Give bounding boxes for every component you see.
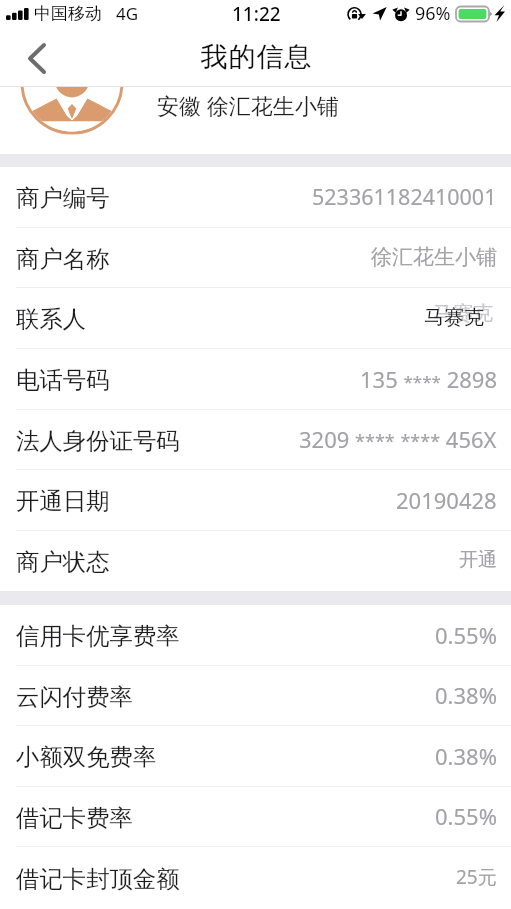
- staticText: 中国移动: [34, 3, 102, 24]
- button[interactable]: Back: [10, 30, 64, 84]
- staticText: 开通日期: [16, 486, 110, 515]
- staticText: 3209 **** **** 456X: [299, 424, 497, 454]
- staticText: 0.38%: [435, 741, 497, 771]
- staticText: 0.38%: [435, 680, 497, 710]
- staticText: 法人身份证号码: [16, 426, 180, 455]
- staticText: 小额双免费率: [16, 742, 157, 771]
- button[interactable]: 借记卡封顶金额: [0, 847, 511, 909]
- staticText: 135 **** 2898: [360, 364, 497, 394]
- staticText: 523361182410001: [312, 182, 497, 211]
- button[interactable]: 开通日期: [0, 470, 511, 531]
- staticText: 联系人: [16, 304, 87, 333]
- button[interactable]: 联系人: [0, 288, 511, 349]
- staticText: 商户状态: [16, 547, 110, 576]
- staticText: 4G: [116, 2, 139, 25]
- button[interactable]: 借记卡费率: [0, 787, 511, 847]
- staticText: 96%: [415, 1, 451, 26]
- staticText: 25元: [456, 864, 497, 890]
- button[interactable]: 小额双免费率: [0, 726, 511, 787]
- staticText: 11:22: [232, 1, 281, 27]
- staticText: 商户编号: [16, 183, 110, 212]
- staticText: 20190428: [396, 485, 497, 515]
- button[interactable]: 商户名称: [0, 228, 511, 288]
- button[interactable]: 云闪付费率: [0, 666, 511, 726]
- staticText: 借记卡封顶金额: [16, 864, 180, 893]
- button[interactable]: 商户状态: [0, 531, 511, 591]
- staticText: 我的信息: [200, 40, 312, 74]
- button[interactable]: 商户编号: [0, 167, 511, 228]
- button[interactable]: 电话号码: [0, 349, 511, 410]
- staticText: 马赛克: [433, 301, 493, 326]
- staticText: 借记卡费率: [16, 803, 133, 832]
- staticText: 安徽 徐汇花生小铺: [157, 90, 339, 120]
- staticText: 云闪付费率: [16, 682, 133, 711]
- other: Rotation lock: [348, 6, 366, 22]
- staticText: 马赛克: [424, 305, 484, 330]
- staticText: 0.55%: [435, 620, 497, 650]
- button[interactable]: 信用卡优享费率: [0, 605, 511, 666]
- staticText: 徐汇花生小铺: [371, 244, 497, 270]
- staticText: 开通: [459, 548, 497, 572]
- staticText: 电话号码: [16, 365, 110, 394]
- staticText: 0.55%: [435, 801, 497, 831]
- staticText: 信用卡优享费率: [16, 621, 180, 650]
- button[interactable]: 法人身份证号码: [0, 410, 511, 470]
- staticText: 商户名称: [16, 244, 110, 273]
- other: Alarm: [391, 6, 411, 22]
